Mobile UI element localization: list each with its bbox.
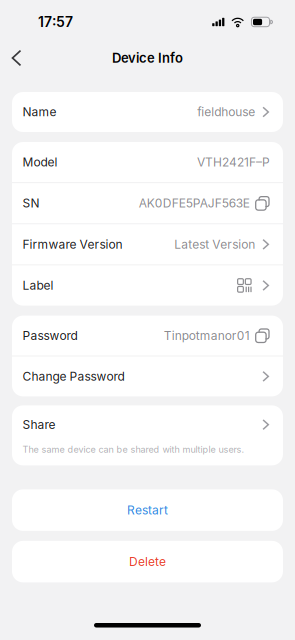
button[interactable]: Password: [12, 316, 283, 356]
staticText: Name: [22, 105, 56, 119]
staticText: 17:57: [38, 13, 73, 30]
staticText: Latest Version: [174, 237, 255, 252]
staticText: Device Info: [112, 50, 183, 66]
staticText: The same device can be shared with multi…: [22, 444, 244, 455]
staticText: VTH2421F–P: [197, 155, 270, 169]
button[interactable]: SN: [12, 183, 283, 223]
staticText: Password: [22, 328, 77, 343]
button[interactable]: Label: [12, 265, 283, 306]
staticText: Change Password: [22, 369, 124, 384]
staticText: SN: [22, 196, 39, 210]
staticText: Label: [22, 278, 53, 293]
staticText: Delete: [129, 554, 166, 569]
button[interactable]: Share: [12, 405, 283, 444]
staticText: Share: [22, 417, 55, 432]
button[interactable]: Firmware Version: [12, 224, 283, 264]
button[interactable]: Change Password: [12, 356, 283, 396]
staticText: Model: [22, 155, 57, 169]
button[interactable]: Name: [12, 92, 283, 132]
button[interactable]: Restart: [12, 489, 283, 531]
button[interactable]: Delete: [12, 541, 283, 582]
staticText: Restart: [127, 503, 168, 517]
staticText: AK0DFE5PAJF563E: [139, 196, 250, 210]
staticText: Firmware Version: [22, 237, 122, 252]
button[interactable]: Back: [0, 44, 33, 72]
staticText: fieldhouse: [197, 105, 255, 119]
button[interactable]: Model: [12, 142, 283, 182]
staticText: Tinpotmanor01: [164, 328, 250, 343]
